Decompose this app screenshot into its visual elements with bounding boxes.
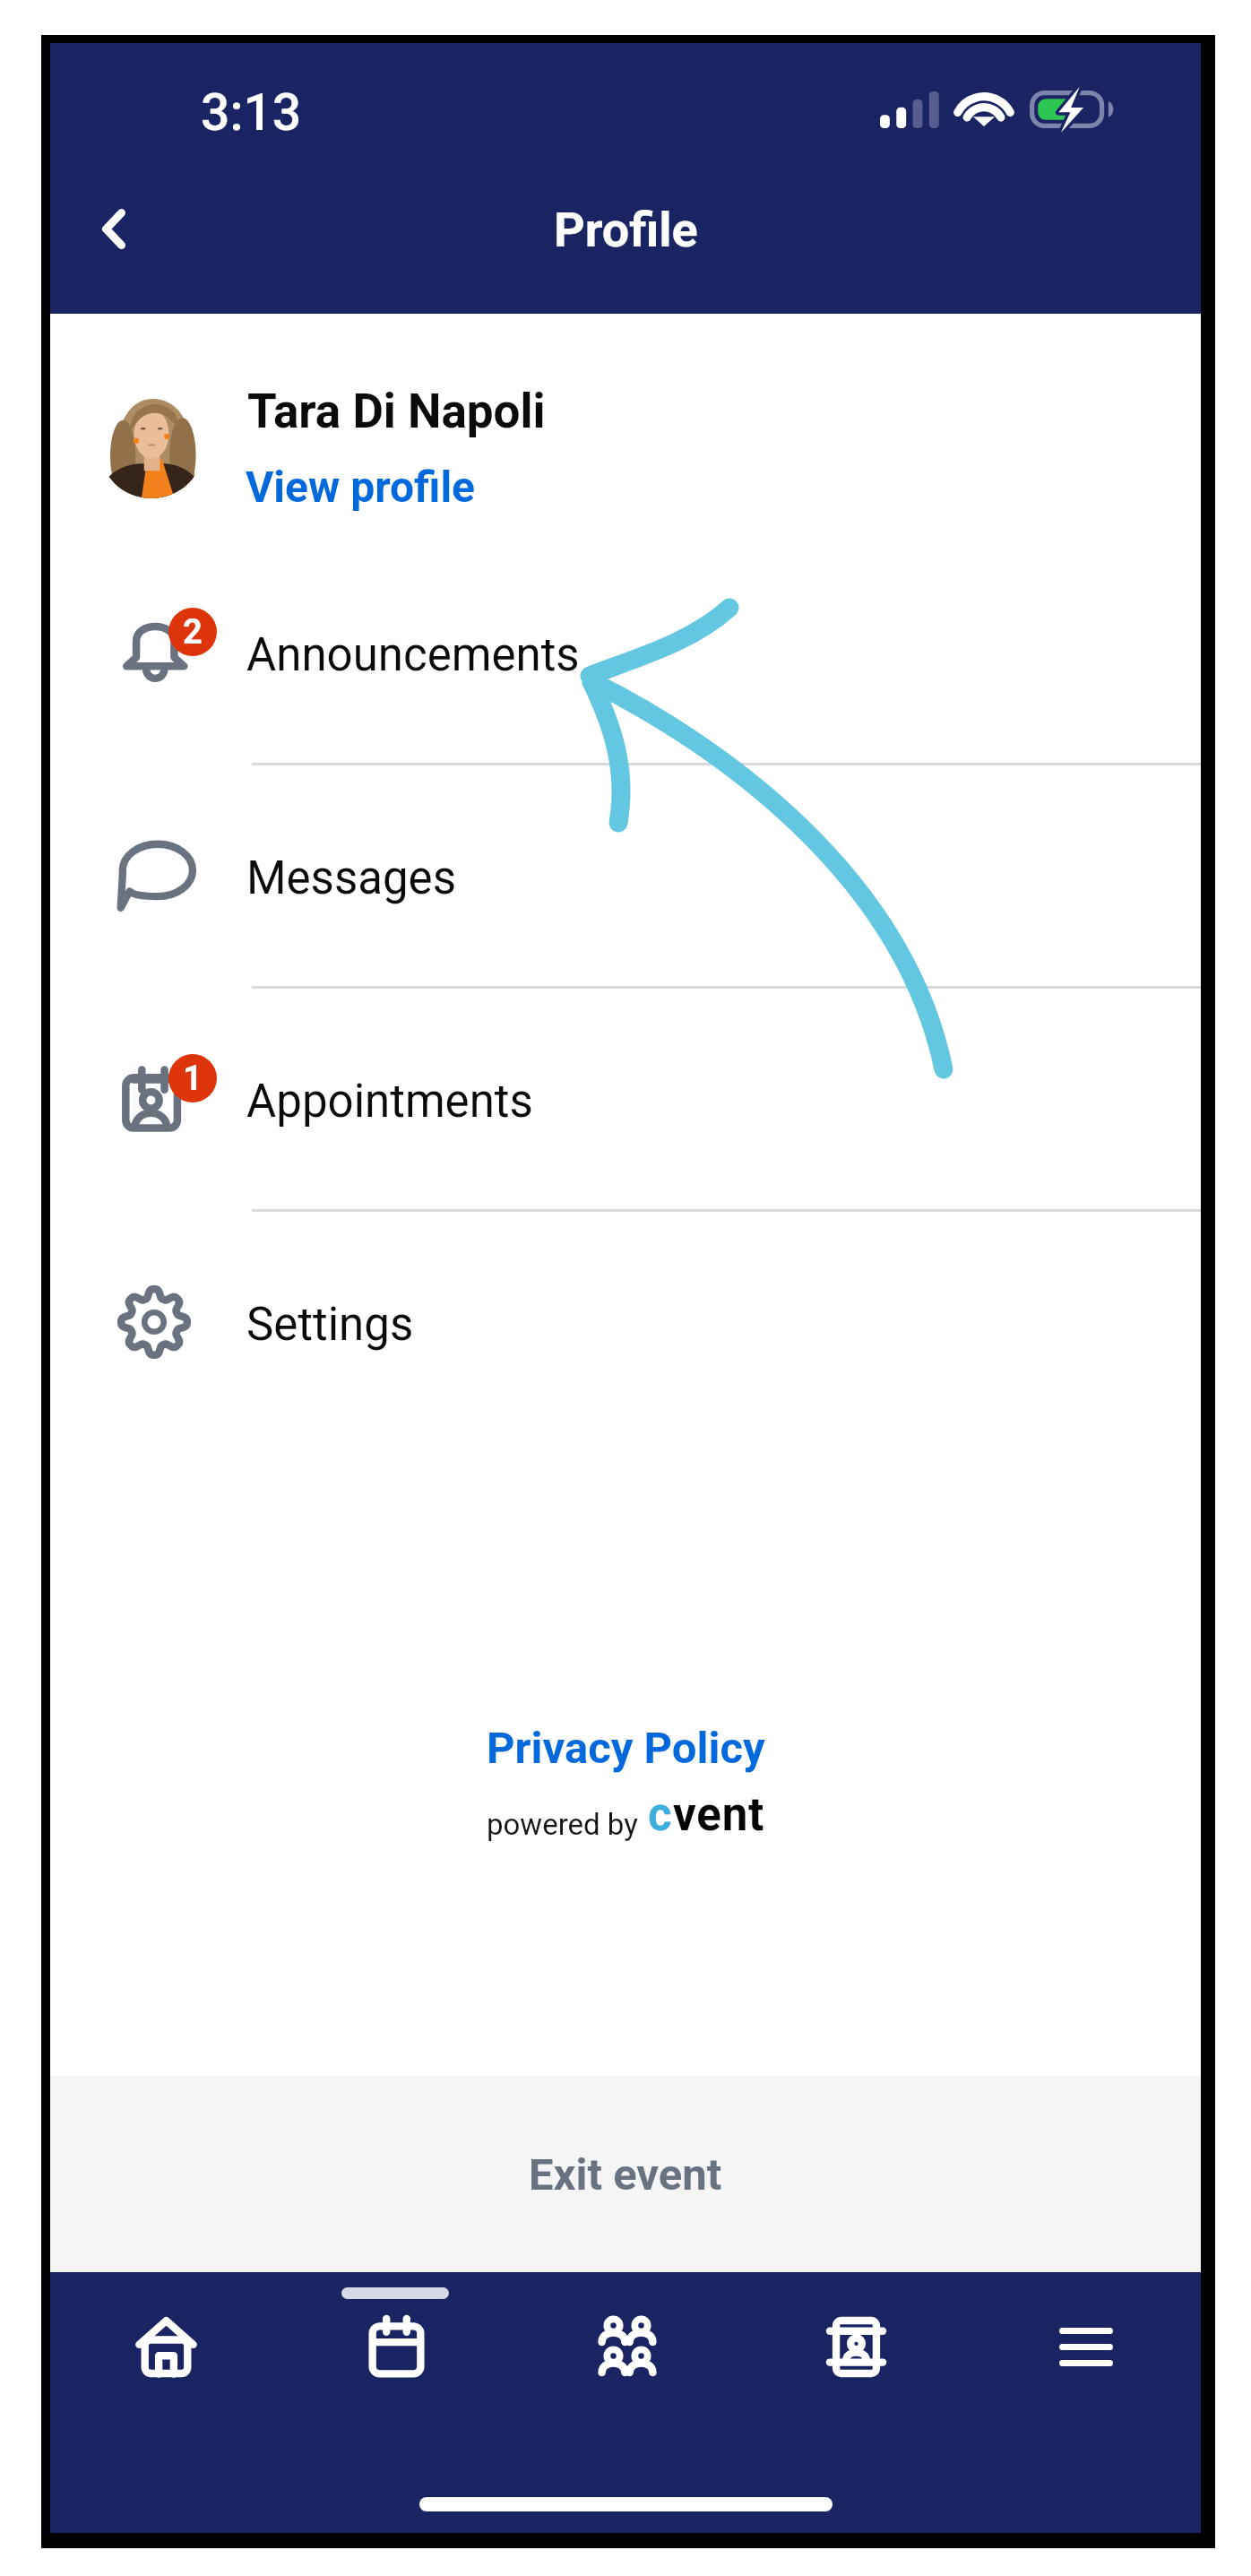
staticText: Exit event xyxy=(529,2149,722,2200)
staticText: powered by xyxy=(487,1807,638,1842)
staticText: 1 xyxy=(183,1059,203,1099)
staticText: Privacy Policy xyxy=(487,1723,765,1774)
staticText: c xyxy=(648,1788,673,1842)
staticText: Appointments xyxy=(246,1075,533,1128)
button[interactable]: 2 xyxy=(50,540,1201,764)
staticText: Profile xyxy=(554,202,698,258)
staticText: vent xyxy=(673,1788,765,1842)
button[interactable]: Messages xyxy=(50,764,1201,987)
button[interactable]: 1 xyxy=(50,987,1201,1210)
staticText: Announcements xyxy=(246,628,580,682)
button[interactable]: Menu xyxy=(1029,2289,1143,2404)
button[interactable]: Schedule xyxy=(339,2289,453,2404)
button[interactable]: Privacy Policy xyxy=(487,1723,765,1774)
button[interactable]: Exhibitors xyxy=(798,2289,913,2404)
button[interactable]: Attendees xyxy=(570,2289,685,2404)
button[interactable]: Exit event xyxy=(50,2076,1201,2273)
button[interactable]: Home xyxy=(108,2289,223,2404)
button[interactable]: Back xyxy=(64,186,164,272)
button[interactable]: View profile xyxy=(246,462,476,512)
staticText: Messages xyxy=(246,851,456,905)
staticText: Settings xyxy=(246,1298,414,1352)
button[interactable]: Tara Di Napoli xyxy=(50,314,1201,540)
staticText: Tara Di Napoli xyxy=(247,384,546,439)
staticText: View profile xyxy=(246,462,476,512)
button[interactable]: Settings xyxy=(50,1210,1201,1433)
staticText: 2 xyxy=(183,612,203,653)
staticText: 3:13 xyxy=(201,82,302,143)
